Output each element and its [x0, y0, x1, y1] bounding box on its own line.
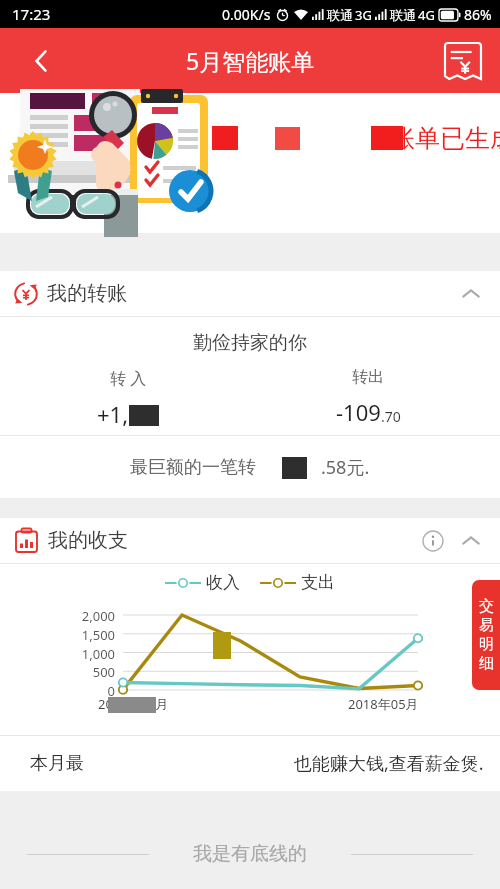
- staticText: 最巨额的一笔转: [130, 456, 256, 479]
- staticText: 3G: [355, 6, 372, 24]
- button[interactable]: Back: [24, 44, 58, 78]
- staticText: .58元.: [321, 455, 370, 480]
- staticText: 我的转账: [47, 281, 127, 306]
- staticText: 2018年05月: [348, 695, 419, 713]
- staticText: 转出: [352, 367, 384, 387]
- button[interactable]: Info: [422, 530, 444, 552]
- staticText: 4G: [418, 6, 435, 24]
- button[interactable]: 我的收支: [0, 518, 500, 563]
- staticText: 0.00K/s: [222, 5, 271, 24]
- button[interactable]: Collapse: [458, 528, 484, 554]
- staticText: 支出: [301, 572, 335, 593]
- staticText: 联通: [327, 7, 353, 23]
- staticText: 我是有底线的: [193, 842, 307, 866]
- staticText: .70: [381, 407, 401, 426]
- staticText: 转 入: [110, 367, 147, 389]
- staticText: 2,000: [0, 607, 115, 625]
- staticText: +1,: [97, 399, 129, 429]
- button[interactable]: 我的转账: [0, 271, 500, 316]
- staticText: 收入: [206, 572, 240, 593]
- staticText: 5月智能账单: [186, 45, 315, 76]
- staticText: 1,500: [0, 626, 115, 644]
- staticText: 我的收支: [48, 528, 128, 553]
- staticText: 交 易 明 细: [479, 597, 494, 673]
- staticText: 本月最: [30, 752, 84, 775]
- staticText: 账单已生成: [390, 123, 500, 154]
- staticText: -109: [336, 397, 381, 427]
- staticText: 0: [0, 682, 115, 700]
- button[interactable]: 交 易 明 细: [472, 580, 500, 690]
- button[interactable]: Collapse: [458, 281, 484, 307]
- staticText: 也能赚大钱,查看薪金煲.: [294, 751, 484, 776]
- staticText: 500: [0, 663, 115, 681]
- staticText: 86%: [464, 5, 492, 24]
- button[interactable]: 本月最: [0, 736, 500, 791]
- button[interactable]: 最巨额的一笔转: [0, 436, 500, 498]
- staticText: 1,000: [0, 645, 115, 663]
- staticText: 联通: [390, 7, 416, 23]
- staticText: 2017年12月: [98, 695, 169, 713]
- button[interactable]: Bill details: [440, 38, 486, 84]
- staticText: 勤俭持家的你: [193, 331, 307, 355]
- staticText: 17:23: [12, 4, 51, 24]
